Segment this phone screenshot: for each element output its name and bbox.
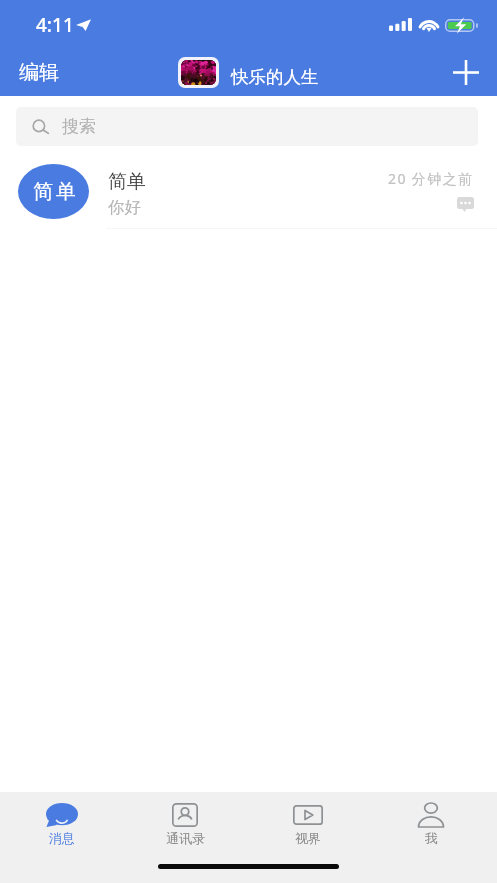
staticText: 你好 — [108, 197, 141, 218]
staticText: 通讯录 — [166, 830, 205, 846]
staticText: 我 — [425, 830, 438, 846]
button[interactable]: 视界 — [263, 801, 353, 851]
button[interactable]: Add — [435, 48, 497, 96]
staticText: 4:11 — [36, 12, 74, 38]
button[interactable]: 我 — [386, 801, 476, 851]
button[interactable]: 快乐的人生 — [178, 55, 319, 90]
staticText: 编辑 — [19, 60, 59, 85]
staticText: 快乐的人生 — [231, 66, 319, 88]
staticText: 视界 — [295, 830, 321, 846]
staticText: 简单 — [108, 170, 146, 194]
button[interactable]: 编辑 — [0, 48, 78, 96]
button[interactable]: 搜索 — [16, 107, 478, 146]
staticText: 20 分钟之前 — [388, 169, 474, 188]
staticText: 消息 — [49, 830, 75, 846]
button[interactable]: 简单 — [0, 150, 497, 229]
button[interactable]: 通讯录 — [140, 801, 230, 851]
staticText: 搜索 — [62, 116, 96, 137]
button[interactable]: 消息 — [17, 801, 107, 851]
staticText: 简单 — [32, 179, 77, 204]
